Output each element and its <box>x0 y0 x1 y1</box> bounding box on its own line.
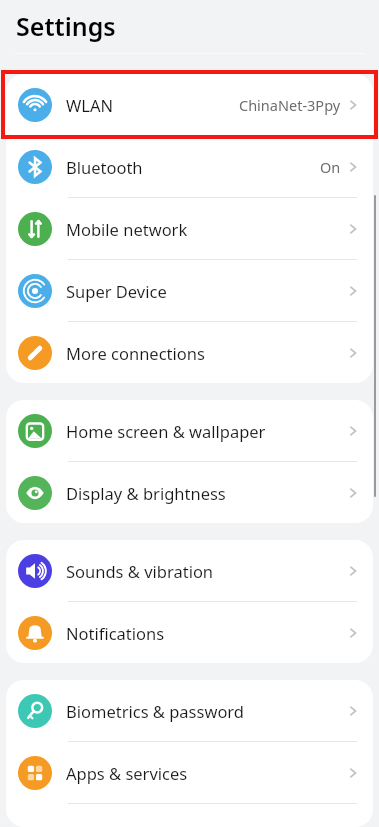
other: More connections <box>18 336 52 370</box>
other: Super Device <box>18 274 52 308</box>
other: Sounds and vibration <box>18 554 52 588</box>
staticText: Notifications <box>66 622 165 644</box>
button[interactable]: More connections <box>6 322 373 383</box>
staticText: Home screen & wallpaper <box>66 420 266 442</box>
staticText: On <box>320 157 341 177</box>
button[interactable]: Notifications <box>6 602 373 663</box>
other: Bluetooth <box>18 150 52 184</box>
staticText: Apps & services <box>66 762 188 784</box>
button[interactable]: WLAN <box>6 74 373 135</box>
other: Notifications <box>18 616 52 650</box>
other: Apps and services <box>18 756 52 790</box>
other: Home screen and wallpaper <box>18 414 52 448</box>
button[interactable]: Biometrics and password <box>6 680 373 741</box>
button[interactable]: Apps and services <box>6 742 373 803</box>
staticText: ChinaNet-3Ppy <box>239 95 341 115</box>
other: Display and brightness <box>18 476 52 510</box>
staticText: Super Device <box>66 280 167 302</box>
button[interactable]: Sounds and vibration <box>6 540 373 601</box>
button[interactable]: Super Device <box>6 260 373 321</box>
staticText: More connections <box>66 342 205 364</box>
other: Biometrics and password <box>18 694 52 728</box>
staticText: Display & brightness <box>66 482 226 504</box>
button[interactable]: Home screen and wallpaper <box>6 400 373 461</box>
other: Mobile network <box>18 212 52 246</box>
staticText: Sounds & vibration <box>66 560 214 582</box>
button[interactable]: Mobile network <box>6 198 373 259</box>
staticText: Bluetooth <box>66 156 143 178</box>
button[interactable]: Bluetooth <box>6 136 373 197</box>
staticText: WLAN <box>66 94 114 116</box>
staticText: Mobile network <box>66 218 188 240</box>
other: WLAN <box>18 88 52 122</box>
staticText: Biometrics & password <box>66 700 245 722</box>
button[interactable]: Display and brightness <box>6 462 373 523</box>
staticText: Settings <box>16 9 116 43</box>
